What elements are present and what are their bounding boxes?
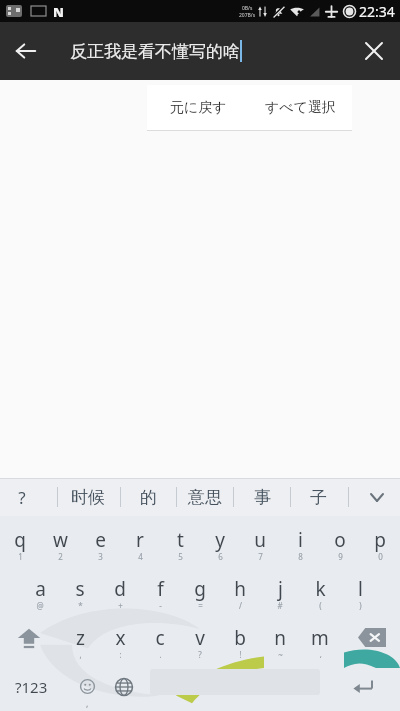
staticText: 9: [338, 551, 343, 562]
button[interactable]: h: [220, 564, 260, 613]
staticText: 22:34: [359, 2, 395, 21]
staticText: 0: [378, 551, 383, 562]
staticText: y: [215, 527, 225, 553]
staticText: x: [115, 625, 126, 651]
staticText: 3: [98, 551, 103, 562]
staticText: ?123: [15, 677, 48, 697]
button[interactable]: すべて選択: [249, 85, 352, 131]
button[interactable]: i: [280, 516, 320, 564]
staticText: 意思: [188, 487, 222, 508]
staticText: k: [315, 576, 326, 602]
button[interactable]: Clear: [348, 25, 400, 77]
button[interactable]: y: [200, 516, 240, 564]
button[interactable]: l: [340, 564, 380, 613]
staticText: 子: [310, 487, 327, 508]
button[interactable]: k: [300, 564, 340, 613]
button[interactable]: ?123: [0, 662, 62, 711]
staticText: #: [277, 600, 283, 611]
staticText: o: [334, 527, 346, 553]
staticText: ~: [278, 649, 283, 660]
button[interactable]: j: [260, 564, 300, 613]
button[interactable]: 子: [292, 478, 344, 516]
staticText: ?: [198, 649, 202, 660]
staticText: .: [159, 649, 162, 660]
staticText: n: [274, 625, 286, 651]
button[interactable]: w: [40, 516, 80, 564]
button[interactable]: a: [20, 564, 60, 613]
staticText: 元に戻す: [170, 99, 227, 117]
button[interactable]: x: [100, 613, 140, 662]
button[interactable]: c: [140, 613, 180, 662]
button[interactable]: v: [180, 613, 220, 662]
staticText: 6: [218, 551, 223, 562]
button[interactable]: 时候: [62, 478, 114, 516]
button[interactable]: 的: [122, 478, 174, 516]
button[interactable]: 元に戻す: [147, 85, 249, 131]
button[interactable]: m: [300, 613, 340, 662]
staticText: d: [114, 576, 126, 602]
staticText: m: [311, 625, 329, 651]
staticText: r: [136, 527, 144, 553]
button[interactable]: Back: [0, 25, 52, 77]
button[interactable]: u: [240, 516, 280, 564]
staticText: 0B/s: [242, 5, 253, 12]
staticText: t: [177, 527, 184, 553]
button[interactable]: g: [180, 564, 220, 613]
staticText: q: [14, 527, 26, 553]
button[interactable]: e: [80, 516, 120, 564]
staticText: N: [53, 3, 64, 21]
staticText: すべて選択: [265, 99, 336, 117]
staticText: *: [78, 600, 83, 611]
staticText: ,: [86, 697, 89, 709]
button[interactable]: ?: [0, 478, 48, 516]
button[interactable]: Shift: [0, 613, 58, 662]
staticText: 5: [178, 551, 183, 562]
staticText: b: [234, 625, 246, 651]
button[interactable]: 意思: [179, 478, 231, 516]
staticText: u: [254, 527, 266, 553]
staticText: ,: [79, 649, 82, 660]
staticText: e: [95, 527, 106, 553]
button[interactable]: s: [60, 564, 100, 613]
staticText: w: [53, 527, 68, 553]
staticText: 的: [140, 487, 157, 508]
staticText: ): [359, 600, 362, 611]
staticText: ،: [319, 651, 322, 660]
staticText: :: [119, 649, 122, 660]
staticText: 4: [138, 551, 143, 562]
button[interactable]: Emoji: [62, 662, 112, 711]
button[interactable]: 事: [236, 478, 288, 516]
staticText: l: [358, 576, 363, 602]
button[interactable]: p: [360, 516, 400, 564]
button[interactable]: d: [100, 564, 140, 613]
button[interactable]: f: [140, 564, 180, 613]
button[interactable]: t: [160, 516, 200, 564]
staticText: 时候: [71, 487, 105, 508]
button[interactable]: b: [220, 613, 260, 662]
staticText: 2: [58, 551, 63, 562]
staticText: f: [157, 576, 164, 602]
button[interactable]: Enter: [326, 662, 400, 711]
button[interactable]: q: [0, 516, 40, 564]
staticText: h: [234, 576, 246, 602]
button[interactable]: n: [260, 613, 300, 662]
staticText: 207B/s: [239, 12, 256, 19]
staticText: =: [198, 600, 203, 611]
staticText: 反正我是看不懂写的啥: [70, 41, 240, 62]
staticText: v: [195, 625, 205, 651]
staticText: /: [239, 600, 242, 611]
staticText: 事: [254, 487, 271, 508]
button[interactable]: z: [60, 613, 100, 662]
button[interactable]: Delete: [344, 613, 400, 662]
staticText: s: [75, 576, 85, 602]
button[interactable]: o: [320, 516, 360, 564]
button[interactable]: r: [120, 516, 160, 564]
staticText: g: [194, 576, 206, 602]
button[interactable]: Expand suggestions: [354, 478, 400, 516]
staticText: !: [239, 649, 242, 660]
staticText: j: [278, 576, 283, 602]
staticText: i: [298, 527, 303, 553]
button[interactable]: Change language: [100, 662, 148, 711]
staticText: p: [374, 527, 386, 553]
